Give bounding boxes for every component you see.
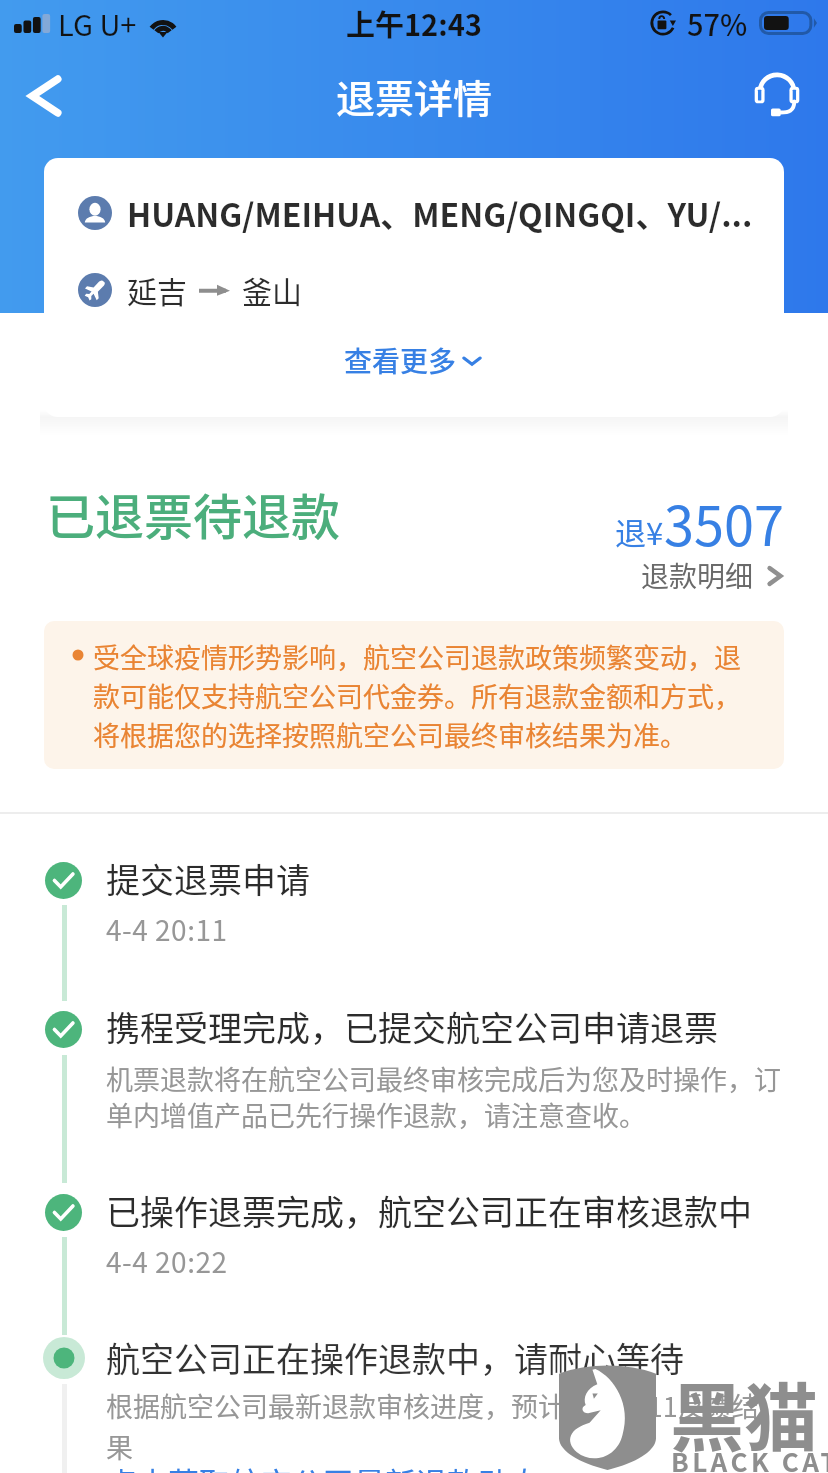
staticText: 延吉: [127, 268, 187, 311]
staticText: 提交退票申请: [106, 854, 310, 903]
staticText: 4-4 20:11: [106, 909, 228, 950]
staticText: 根据航空公司最新退款审核进度，预计8-2 20:11反馈结 果: [106, 1386, 759, 1466]
staticText: 已操作退票完成，航空公司正在审核退款中: [106, 1186, 752, 1235]
button[interactable]: 查看更多: [44, 340, 784, 380]
staticText: 点击获取航空公司最新退款动态: [106, 1459, 540, 1473]
staticText: 黑猫: [670, 1359, 818, 1466]
staticText: 退¥: [615, 509, 664, 554]
staticText: 3507: [664, 483, 784, 561]
button[interactable]: HUANG/MEIHUA、MENG/QINGQI、YU/...: [44, 158, 784, 417]
staticText: 受全球疫情形势影响，航空公司退款政策频繁变动，退 款可能仅支持航空公司代金券。所…: [93, 637, 741, 754]
staticText: 航空公司正在操作退款中，请耐心等待: [106, 1333, 684, 1382]
staticText: 退票详情: [336, 68, 493, 124]
staticText: 57%: [687, 2, 748, 44]
button[interactable]: Back: [13, 64, 77, 128]
staticText: 已退票待退款: [46, 478, 341, 549]
staticText: 机票退款将在航空公司最终审核完成后为您及时操作，订 单内增值产品已先行操作退款，…: [106, 1059, 781, 1134]
button[interactable]: 退款明细: [641, 555, 786, 596]
staticText: BLACK CAT: [671, 1442, 828, 1473]
staticText: 携程受理完成，已提交航空公司申请退票: [106, 1002, 718, 1051]
staticText: 查看更多: [344, 340, 457, 380]
staticText: 4-4 20:22: [106, 1241, 228, 1282]
staticText: 釜山: [242, 268, 302, 311]
staticText: 上午12:43: [346, 2, 482, 44]
staticText: LG U+: [58, 2, 137, 44]
staticText: 退款明细: [641, 555, 754, 596]
button[interactable]: Customer service: [748, 67, 806, 125]
staticText: HUANG/MEIHUA、MENG/QINGQI、YU/...: [127, 190, 753, 236]
